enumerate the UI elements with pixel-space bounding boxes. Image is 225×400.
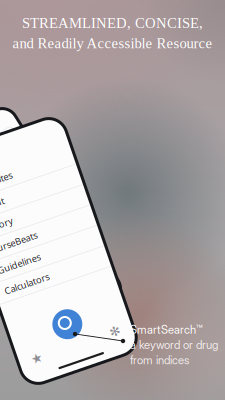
- button[interactable]: History: [0, 201, 102, 223]
- button[interactable]: Search: [27, 313, 57, 343]
- button[interactable]: Guidelines: [0, 244, 102, 266]
- staticText: and Readily Accessible Resource: [12, 35, 212, 51]
- staticText: Favourites: [0, 162, 38, 175]
- button[interactable]: Favourites: [0, 158, 102, 180]
- staticText: ✻: [79, 343, 90, 358]
- staticText: a keyword or drug: [130, 338, 218, 352]
- staticText: Calculators: [0, 270, 40, 283]
- button[interactable]: Calculators: [0, 266, 102, 288]
- button[interactable]: Recent: [0, 180, 102, 201]
- staticText: Recent: [0, 184, 22, 196]
- button[interactable]: Drug Index: [0, 186, 17, 230]
- button[interactable]: NurseBeats: [0, 223, 102, 244]
- staticText: SmartSearch™: [130, 323, 203, 337]
- staticText: History: [0, 205, 24, 218]
- staticText: from indices: [130, 353, 189, 367]
- button[interactable]: Box or Table Index: [0, 136, 17, 180]
- staticText: Drug Index: [0, 205, 5, 223]
- staticText: NurseBeats: [0, 227, 42, 239]
- staticText: STREAMLINED, CONCISE,: [22, 15, 203, 31]
- staticText: Guidelines: [0, 249, 38, 261]
